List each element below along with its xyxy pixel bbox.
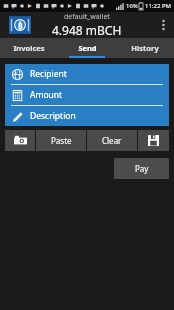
staticText: ₿ xyxy=(18,20,23,31)
staticText: History xyxy=(131,43,159,53)
button[interactable]: Pay xyxy=(114,158,169,179)
staticText: Clear xyxy=(102,135,122,146)
button[interactable]: Amount xyxy=(5,85,169,105)
button[interactable]: Wallet logo xyxy=(9,14,31,36)
staticText: Amount xyxy=(30,89,63,101)
button[interactable]: Recipient xyxy=(5,64,169,84)
staticText: Paste xyxy=(51,135,72,146)
staticText: 16% xyxy=(126,2,138,10)
button[interactable]: Description xyxy=(5,106,169,126)
staticText: Invoices xyxy=(13,43,45,53)
button[interactable]: Paste xyxy=(36,130,86,151)
staticText: Recipient xyxy=(30,68,67,80)
button[interactable]: Send xyxy=(58,38,116,58)
button[interactable]: Invoices xyxy=(0,38,58,58)
staticText: Description xyxy=(30,110,76,122)
button[interactable]: Clear xyxy=(87,130,137,151)
staticText: Pay xyxy=(135,163,149,174)
button[interactable]: More options xyxy=(156,14,170,36)
staticText: 4.948 mBCH xyxy=(52,22,122,38)
staticText: Send xyxy=(78,43,97,53)
staticText: 11:22 PM xyxy=(145,2,171,10)
button[interactable]: Save xyxy=(138,130,169,151)
button[interactable]: History xyxy=(116,38,174,58)
staticText: default_wallet xyxy=(64,12,110,22)
button[interactable]: Scan QR code xyxy=(5,130,35,151)
